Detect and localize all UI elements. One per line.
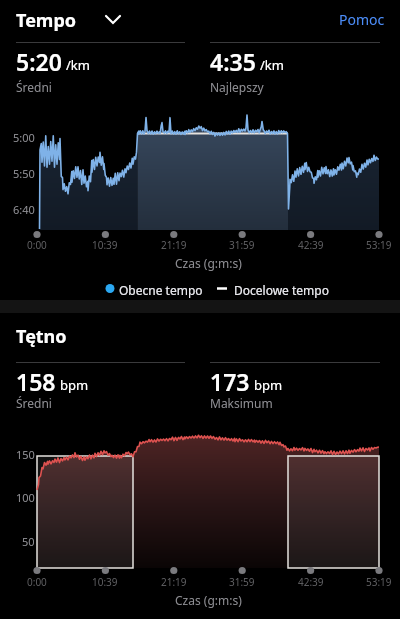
staticText: bpm xyxy=(60,376,89,394)
button[interactable]: Tempo xyxy=(12,2,126,34)
staticText: Czas (g:m:s) xyxy=(175,255,242,271)
staticText: 0:00 xyxy=(27,575,47,589)
staticText: Pomoc xyxy=(339,10,385,29)
button[interactable]: Pomoc xyxy=(339,10,385,29)
staticText: Tempo xyxy=(16,8,77,33)
staticText: 6:40 xyxy=(13,202,35,216)
staticText: bpm xyxy=(254,376,283,394)
staticText: 150 xyxy=(16,447,35,461)
staticText: 5:20 xyxy=(16,46,62,77)
staticText: 173 xyxy=(210,366,250,397)
staticText: Średni xyxy=(16,395,52,411)
staticText: 50 xyxy=(22,534,35,548)
staticText: 158 xyxy=(16,366,56,397)
staticText: /km xyxy=(260,56,284,74)
staticText: Docelowe tempo xyxy=(234,282,329,298)
staticText: /km xyxy=(66,56,90,74)
staticText: 42:39 xyxy=(298,575,324,589)
staticText: 10:39 xyxy=(92,238,118,252)
staticText: Tętno xyxy=(16,324,67,349)
staticText: Maksimum xyxy=(210,395,273,411)
staticText: Najlepszy xyxy=(210,79,264,95)
staticText: 5:50 xyxy=(13,166,35,180)
staticText: 4:35 xyxy=(210,46,256,77)
staticText: 31:59 xyxy=(229,575,255,589)
staticText: 21:19 xyxy=(161,575,187,589)
staticText: 53:19 xyxy=(366,575,392,589)
staticText: Obecne tempo xyxy=(119,282,203,298)
staticText: 10:39 xyxy=(92,575,118,589)
staticText: 31:59 xyxy=(229,238,255,252)
staticText: 53:19 xyxy=(366,238,392,252)
staticText: Czas (g:m:s) xyxy=(175,592,242,608)
staticText: 5:00 xyxy=(13,130,35,144)
staticText: Średni xyxy=(16,79,52,95)
staticText: 0:00 xyxy=(27,238,47,252)
staticText: 100 xyxy=(16,490,35,504)
staticText: 42:39 xyxy=(298,238,324,252)
staticText: 21:19 xyxy=(161,238,187,252)
